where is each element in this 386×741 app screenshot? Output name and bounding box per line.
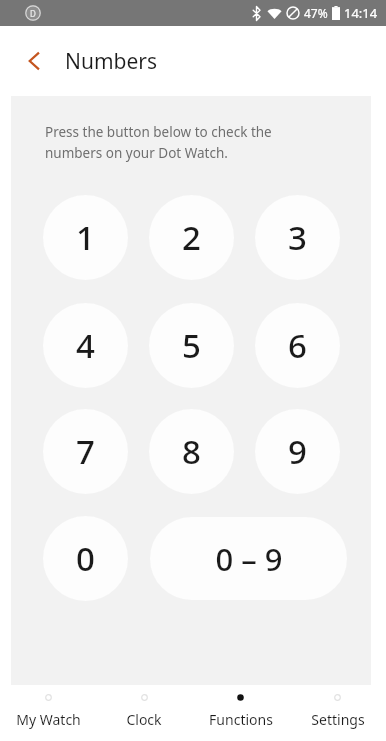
staticText: Numbers — [65, 47, 158, 76]
button[interactable]: 1 — [43, 195, 128, 280]
button[interactable]: 7 — [43, 409, 128, 494]
button[interactable]: 6 — [255, 303, 340, 388]
button[interactable]: 9 — [255, 409, 340, 494]
button[interactable]: Clock — [96, 685, 192, 741]
staticText: 5 — [182, 323, 201, 368]
button[interactable]: 4 — [43, 303, 128, 388]
button[interactable]: 5 — [149, 303, 234, 388]
button[interactable]: 0 – 9 — [150, 517, 347, 600]
staticText: 2 — [182, 215, 201, 260]
button[interactable]: 0 — [43, 516, 128, 601]
staticText: 1 — [76, 215, 95, 260]
staticText: 0 — [76, 536, 95, 581]
button[interactable]: Back — [14, 40, 56, 82]
button[interactable]: 3 — [255, 195, 340, 280]
staticText: 9 — [288, 429, 307, 474]
staticText: 3 — [288, 215, 307, 260]
staticText: Clock — [126, 710, 162, 729]
staticText: 8 — [182, 429, 201, 474]
staticText: D — [30, 8, 36, 19]
button[interactable]: Functions — [192, 685, 289, 741]
button[interactable]: Settings — [289, 685, 386, 741]
staticText: My Watch — [16, 710, 81, 729]
staticText: 47% — [304, 5, 328, 21]
staticText: 6 — [288, 323, 307, 368]
staticText: Functions — [209, 710, 273, 729]
button[interactable]: 2 — [149, 195, 234, 280]
staticText: Settings — [311, 710, 365, 729]
staticText: 4 — [76, 323, 95, 368]
button[interactable]: My Watch — [0, 685, 96, 741]
staticText: 7 — [76, 429, 95, 474]
staticText: 14:14 — [344, 4, 378, 22]
staticText: Press the button below to check the numb… — [45, 123, 272, 162]
staticText: 0 – 9 — [215, 538, 283, 580]
button[interactable]: 8 — [149, 409, 234, 494]
